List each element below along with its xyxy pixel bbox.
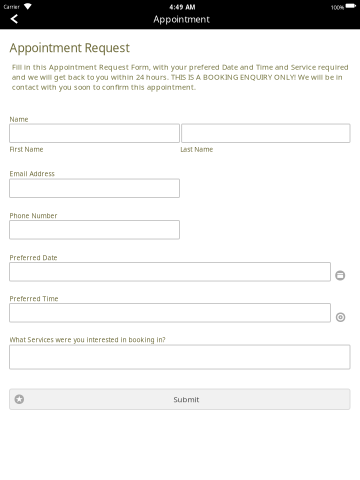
staticText: Appointment bbox=[154, 13, 210, 25]
staticText: Last Name bbox=[180, 144, 213, 154]
staticText: What Services were you interested in boo… bbox=[9, 335, 165, 344]
staticText: First Name bbox=[9, 144, 43, 154]
staticText: Preferred Date bbox=[9, 253, 57, 262]
staticText: Name bbox=[9, 114, 28, 124]
staticText: Appointment Request bbox=[9, 39, 129, 56]
staticText: Fill in this Appointment Request Form, w… bbox=[12, 62, 349, 92]
staticText: 100% bbox=[331, 3, 345, 11]
staticText: Carrier bbox=[3, 3, 19, 10]
button[interactable]: Submit bbox=[9, 389, 350, 409]
staticText: Phone Number bbox=[9, 211, 57, 220]
button[interactable]: Back bbox=[5, 10, 25, 27]
staticText: Preferred Time bbox=[9, 294, 58, 303]
staticText: Submit bbox=[173, 394, 199, 404]
staticText: 4:49 AM bbox=[170, 3, 196, 11]
staticText: Email Address bbox=[9, 169, 54, 178]
